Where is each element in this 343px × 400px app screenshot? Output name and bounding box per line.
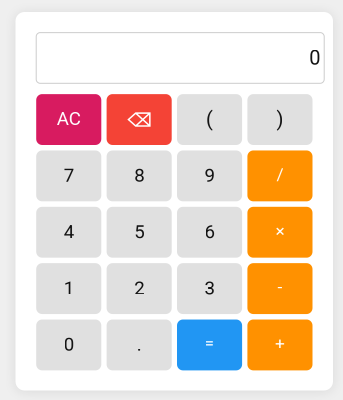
button[interactable]: 6 (177, 207, 242, 258)
button[interactable]: = (177, 319, 242, 370)
button[interactable]: 0 (36, 319, 101, 370)
staticText: / (276, 164, 283, 184)
staticText: 2 (134, 277, 144, 299)
staticText: 5 (134, 221, 144, 243)
staticText: AC (57, 108, 81, 129)
button[interactable]: 1 (36, 263, 101, 314)
staticText: 0 (309, 46, 320, 70)
staticText: - (277, 277, 282, 297)
button[interactable]: 5 (107, 207, 172, 258)
staticText: 6 (204, 221, 214, 243)
staticText: = (204, 333, 214, 354)
button[interactable]: 4 (36, 207, 101, 258)
staticText: ) (276, 107, 283, 131)
staticText: 1 (64, 277, 74, 299)
staticText: 4 (64, 221, 74, 243)
button[interactable]: AC (36, 94, 101, 145)
staticText: 0 (64, 333, 74, 355)
button[interactable]: 9 (177, 150, 242, 201)
button[interactable]: ( (177, 94, 242, 145)
button[interactable]: - (247, 263, 312, 314)
button[interactable]: . (107, 319, 172, 370)
button[interactable]: 2 (107, 263, 172, 314)
button[interactable]: + (247, 319, 312, 370)
button[interactable]: / (247, 150, 312, 201)
button[interactable]: Backspace (107, 94, 172, 145)
staticText: 9 (204, 164, 214, 186)
button[interactable]: 7 (36, 150, 101, 201)
button[interactable]: 8 (107, 150, 172, 201)
staticText: . (137, 333, 142, 355)
button[interactable]: 3 (177, 263, 242, 314)
staticText: × (275, 221, 284, 241)
staticText: 7 (64, 164, 74, 186)
button[interactable]: ) (247, 94, 312, 145)
staticText: 3 (204, 277, 214, 299)
staticText: + (275, 333, 285, 354)
staticText: 8 (134, 164, 144, 186)
staticText: ( (206, 107, 213, 131)
button[interactable]: × (247, 207, 312, 258)
